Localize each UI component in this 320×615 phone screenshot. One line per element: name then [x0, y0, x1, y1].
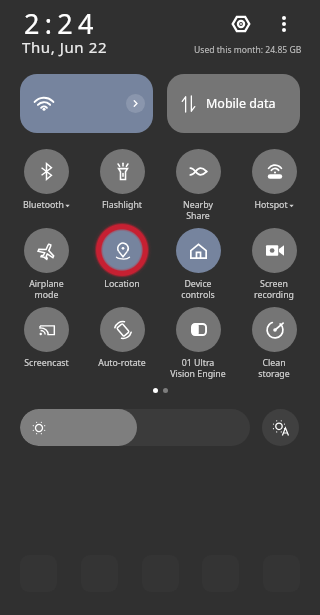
button[interactable]: More options [272, 12, 295, 35]
button[interactable]: Clean storage [236, 304, 312, 379]
button[interactable]: Screen recording [236, 225, 312, 300]
staticText: Location [104, 278, 140, 290]
staticText: Screen recording [254, 278, 294, 300]
button[interactable]: Mobile data [167, 74, 300, 133]
staticText: Clean storage [258, 357, 290, 379]
button[interactable]: Hotspot [236, 146, 312, 211]
staticText: Flashlight [102, 199, 142, 211]
button[interactable]: Auto-rotate [84, 304, 160, 369]
button[interactable]: Bluetooth [8, 146, 84, 211]
staticText: Mobile data [206, 95, 276, 112]
button[interactable]: Airplane mode [8, 225, 84, 300]
staticText: Nearby Share [183, 199, 213, 221]
staticText: Thu, Jun 22 [22, 37, 108, 57]
staticText: Screencast [24, 357, 69, 369]
button[interactable]: Auto brightness [262, 409, 299, 446]
button[interactable]: Settings [229, 12, 252, 35]
staticText: 2:24 [24, 5, 99, 42]
button[interactable]: Screencast [8, 304, 84, 369]
button[interactable]: 01 Ultra Vision Engine [160, 304, 236, 379]
staticText: Bluetooth [23, 199, 64, 211]
button[interactable]: Brightness [20, 409, 250, 446]
button[interactable]: Location [84, 225, 160, 290]
button[interactable]: Flashlight [84, 146, 160, 211]
staticText: Used this month: 24.85 GB [194, 44, 302, 56]
staticText: 01 Ultra Vision Engine [170, 357, 226, 379]
staticText: Auto-rotate [98, 357, 146, 369]
staticText: Airplane mode [29, 278, 64, 300]
button[interactable]: Nearby Share [160, 146, 236, 221]
staticText: Device controls [181, 278, 215, 300]
button[interactable]: Internet [20, 74, 153, 133]
staticText: Hotspot [254, 199, 288, 211]
button[interactable]: Device controls [160, 225, 236, 300]
